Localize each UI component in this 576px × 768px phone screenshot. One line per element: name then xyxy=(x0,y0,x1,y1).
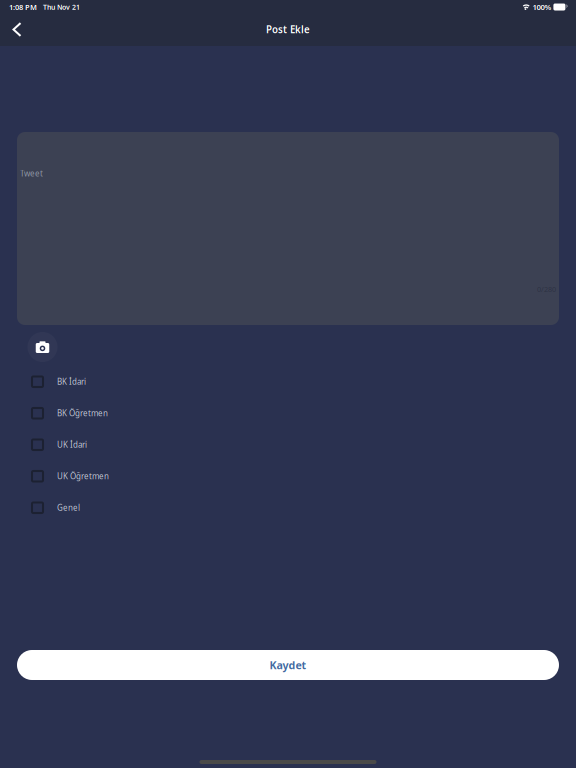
staticText: 100% xyxy=(532,2,551,12)
staticText: Tweet xyxy=(20,168,43,179)
staticText: BK İdari xyxy=(57,376,86,387)
staticText: Genel xyxy=(57,502,80,513)
button[interactable]: BK Öğretmen xyxy=(0,397,576,429)
staticText: 1:08 PM xyxy=(9,2,37,12)
staticText: UK İdari xyxy=(57,439,87,450)
staticText: Thu Nov 21 xyxy=(43,2,80,12)
staticText: Kaydet xyxy=(269,658,306,672)
staticText: Post Ekle xyxy=(266,23,310,36)
staticText: 0/280 xyxy=(537,284,556,294)
button[interactable]: Kaydet xyxy=(17,650,559,680)
button[interactable]: BK İdari xyxy=(0,366,576,397)
button[interactable]: Add photo xyxy=(25,330,59,364)
button[interactable]: Genel xyxy=(0,492,576,523)
button[interactable]: UK İdari xyxy=(0,429,576,460)
button[interactable]: UK Öğretmen xyxy=(0,460,576,492)
staticText: UK Öğretmen xyxy=(57,471,109,481)
button[interactable]: Back xyxy=(2,16,32,42)
staticText: BK Öğretmen xyxy=(57,408,108,418)
